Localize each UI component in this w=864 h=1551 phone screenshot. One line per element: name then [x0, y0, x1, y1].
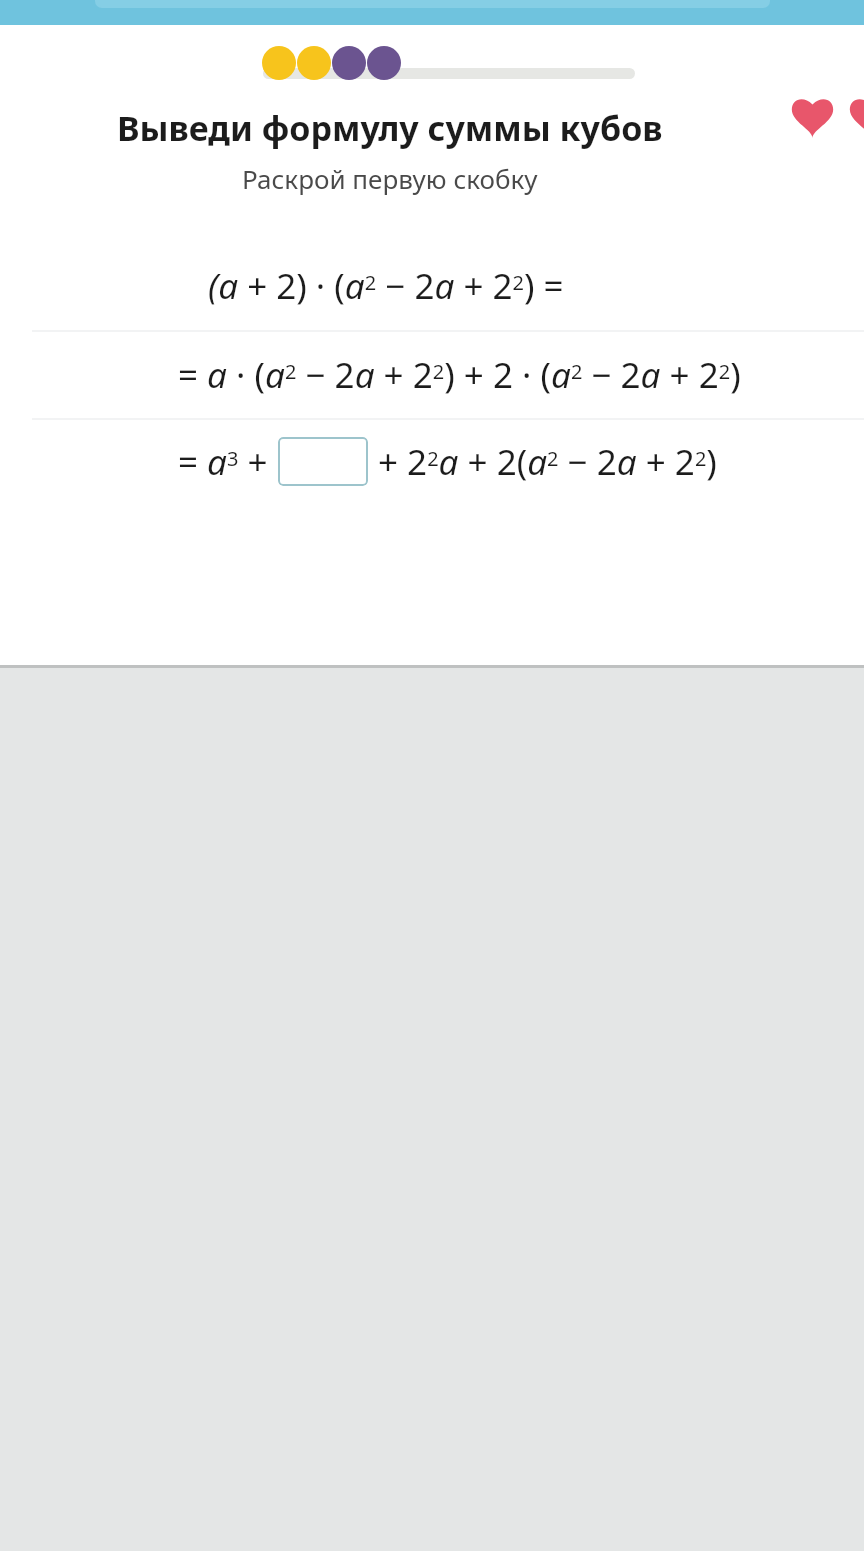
staticText: = a3 + — [178, 438, 268, 486]
staticText: Выведи формулу суммы кубов — [117, 105, 663, 151]
button[interactable] — [367, 46, 401, 80]
button[interactable]: Answer input — [278, 437, 368, 486]
staticText: = a · (a2 − 2a + 22) + 2 · (a2 − 2a + 22… — [178, 351, 741, 399]
staticText: Раскрой первую скобку — [242, 161, 538, 196]
button[interactable]: = a · (a2 − 2a + 22) + 2 · (a2 − 2a + 22… — [178, 351, 741, 399]
staticText: + 22a + 2(a2 − 2a + 22) — [378, 438, 717, 486]
button[interactable] — [297, 46, 331, 80]
button[interactable] — [332, 46, 366, 80]
button[interactable]: Lives — [789, 96, 864, 138]
button[interactable] — [262, 46, 296, 80]
button[interactable]: (a + 2) · (a2 − 2a + 22) = — [208, 262, 564, 310]
staticText: (a + 2) · (a2 − 2a + 22) = — [208, 262, 564, 310]
